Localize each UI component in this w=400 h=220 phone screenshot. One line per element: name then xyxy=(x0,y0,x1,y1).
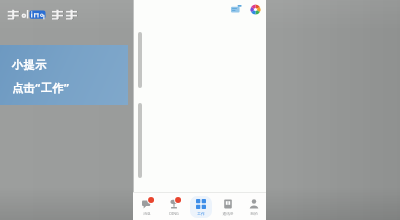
button[interactable]: Scan card xyxy=(229,2,243,16)
staticText: 我的 xyxy=(250,211,258,216)
button[interactable]: 工作 xyxy=(187,193,214,220)
staticText: 小提示 xyxy=(12,58,47,72)
button[interactable]: 我的 xyxy=(241,193,266,220)
button[interactable]: 通讯录 xyxy=(214,193,241,220)
staticText: 工作 xyxy=(197,211,205,216)
staticText: DING xyxy=(169,211,179,216)
staticText: 通讯录 xyxy=(222,211,234,216)
button[interactable]: 小提示 xyxy=(0,45,128,105)
button[interactable]: DING xyxy=(160,193,187,220)
button[interactable]: 消息 xyxy=(133,193,160,220)
staticText: 点击“工作” xyxy=(12,80,70,95)
button[interactable]: Apps xyxy=(248,2,262,16)
staticText: 消息 xyxy=(143,211,151,216)
